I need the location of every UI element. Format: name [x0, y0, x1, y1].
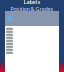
staticText: Position & Grades — [10, 5, 53, 13]
staticText: Labels — [23, 0, 40, 5]
